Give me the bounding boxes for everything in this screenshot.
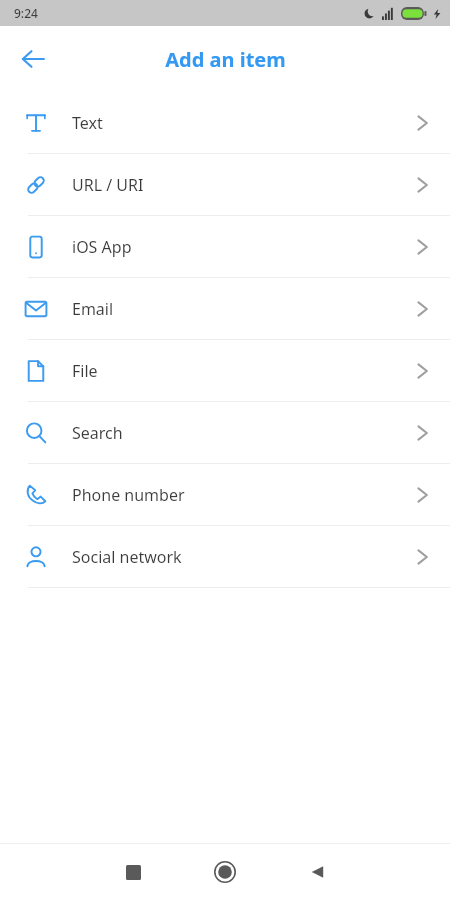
staticText: iOS App [72, 236, 132, 258]
button[interactable]: Recent apps [109, 848, 157, 896]
staticText: Text [72, 112, 103, 134]
staticText: Search [72, 422, 123, 444]
button[interactable]: URL / URI [0, 154, 450, 215]
staticText: Add an item [165, 46, 286, 73]
button[interactable]: Home [201, 848, 249, 896]
button[interactable]: Back [293, 848, 341, 896]
button[interactable]: Search [0, 402, 450, 463]
staticText: Phone number [72, 484, 185, 506]
button[interactable]: Back [11, 37, 55, 81]
button[interactable]: Phone number [0, 464, 450, 525]
button[interactable]: Text [0, 92, 450, 153]
button[interactable]: Social network [0, 526, 450, 587]
staticText: File [72, 360, 98, 382]
button[interactable]: iOS App [0, 216, 450, 277]
button[interactable]: Email [0, 278, 450, 339]
staticText: URL / URI [72, 174, 144, 196]
staticText: Social network [72, 546, 182, 568]
staticText: 9:24 [14, 5, 38, 21]
button[interactable]: File [0, 340, 450, 401]
staticText: Email [72, 298, 114, 320]
